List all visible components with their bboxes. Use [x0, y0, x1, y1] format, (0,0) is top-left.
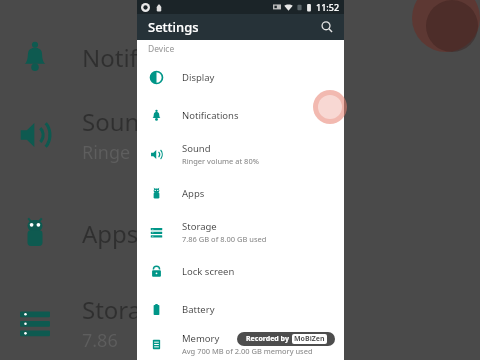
button[interactable]: Apps — [137, 174, 344, 212]
staticText: Notif — [82, 41, 138, 74]
staticText: Display — [182, 71, 215, 84]
button[interactable]: Storage — [137, 212, 344, 252]
button[interactable]: Battery — [137, 290, 344, 328]
staticText: 7.86 GB of 8.00 GB used — [182, 234, 267, 244]
button[interactable]: Memory — [137, 328, 344, 360]
staticText: Device — [148, 43, 175, 55]
staticText: Apps — [82, 217, 139, 250]
staticText: Storage — [182, 220, 217, 233]
staticText: Memory — [182, 332, 220, 345]
staticText: MoBiZen — [294, 334, 325, 344]
staticText: Lock screen — [182, 265, 235, 278]
button[interactable]: Lock screen — [137, 252, 344, 290]
button[interactable]: Search — [316, 16, 338, 38]
staticText: Apps — [182, 187, 205, 200]
staticText: Avg 700 MB of 2.00 GB memory used — [182, 346, 313, 356]
staticText: Ringer volume at 80% — [182, 156, 259, 166]
staticText: Sound — [182, 142, 211, 155]
staticText: Recorded by — [246, 334, 289, 344]
staticText: 7.86 — [82, 328, 118, 353]
staticText: Stora — [82, 293, 142, 326]
staticText: Settings — [148, 18, 199, 36]
button[interactable]: Sound — [137, 134, 344, 174]
staticText: Notifications — [182, 109, 239, 122]
staticText: Battery — [182, 303, 215, 316]
staticText: 11:52 — [316, 1, 340, 13]
staticText: Ringe — [82, 140, 131, 165]
staticText: Soun — [82, 105, 140, 138]
button[interactable]: Display — [137, 58, 344, 96]
button[interactable]: Notifications — [137, 96, 344, 134]
